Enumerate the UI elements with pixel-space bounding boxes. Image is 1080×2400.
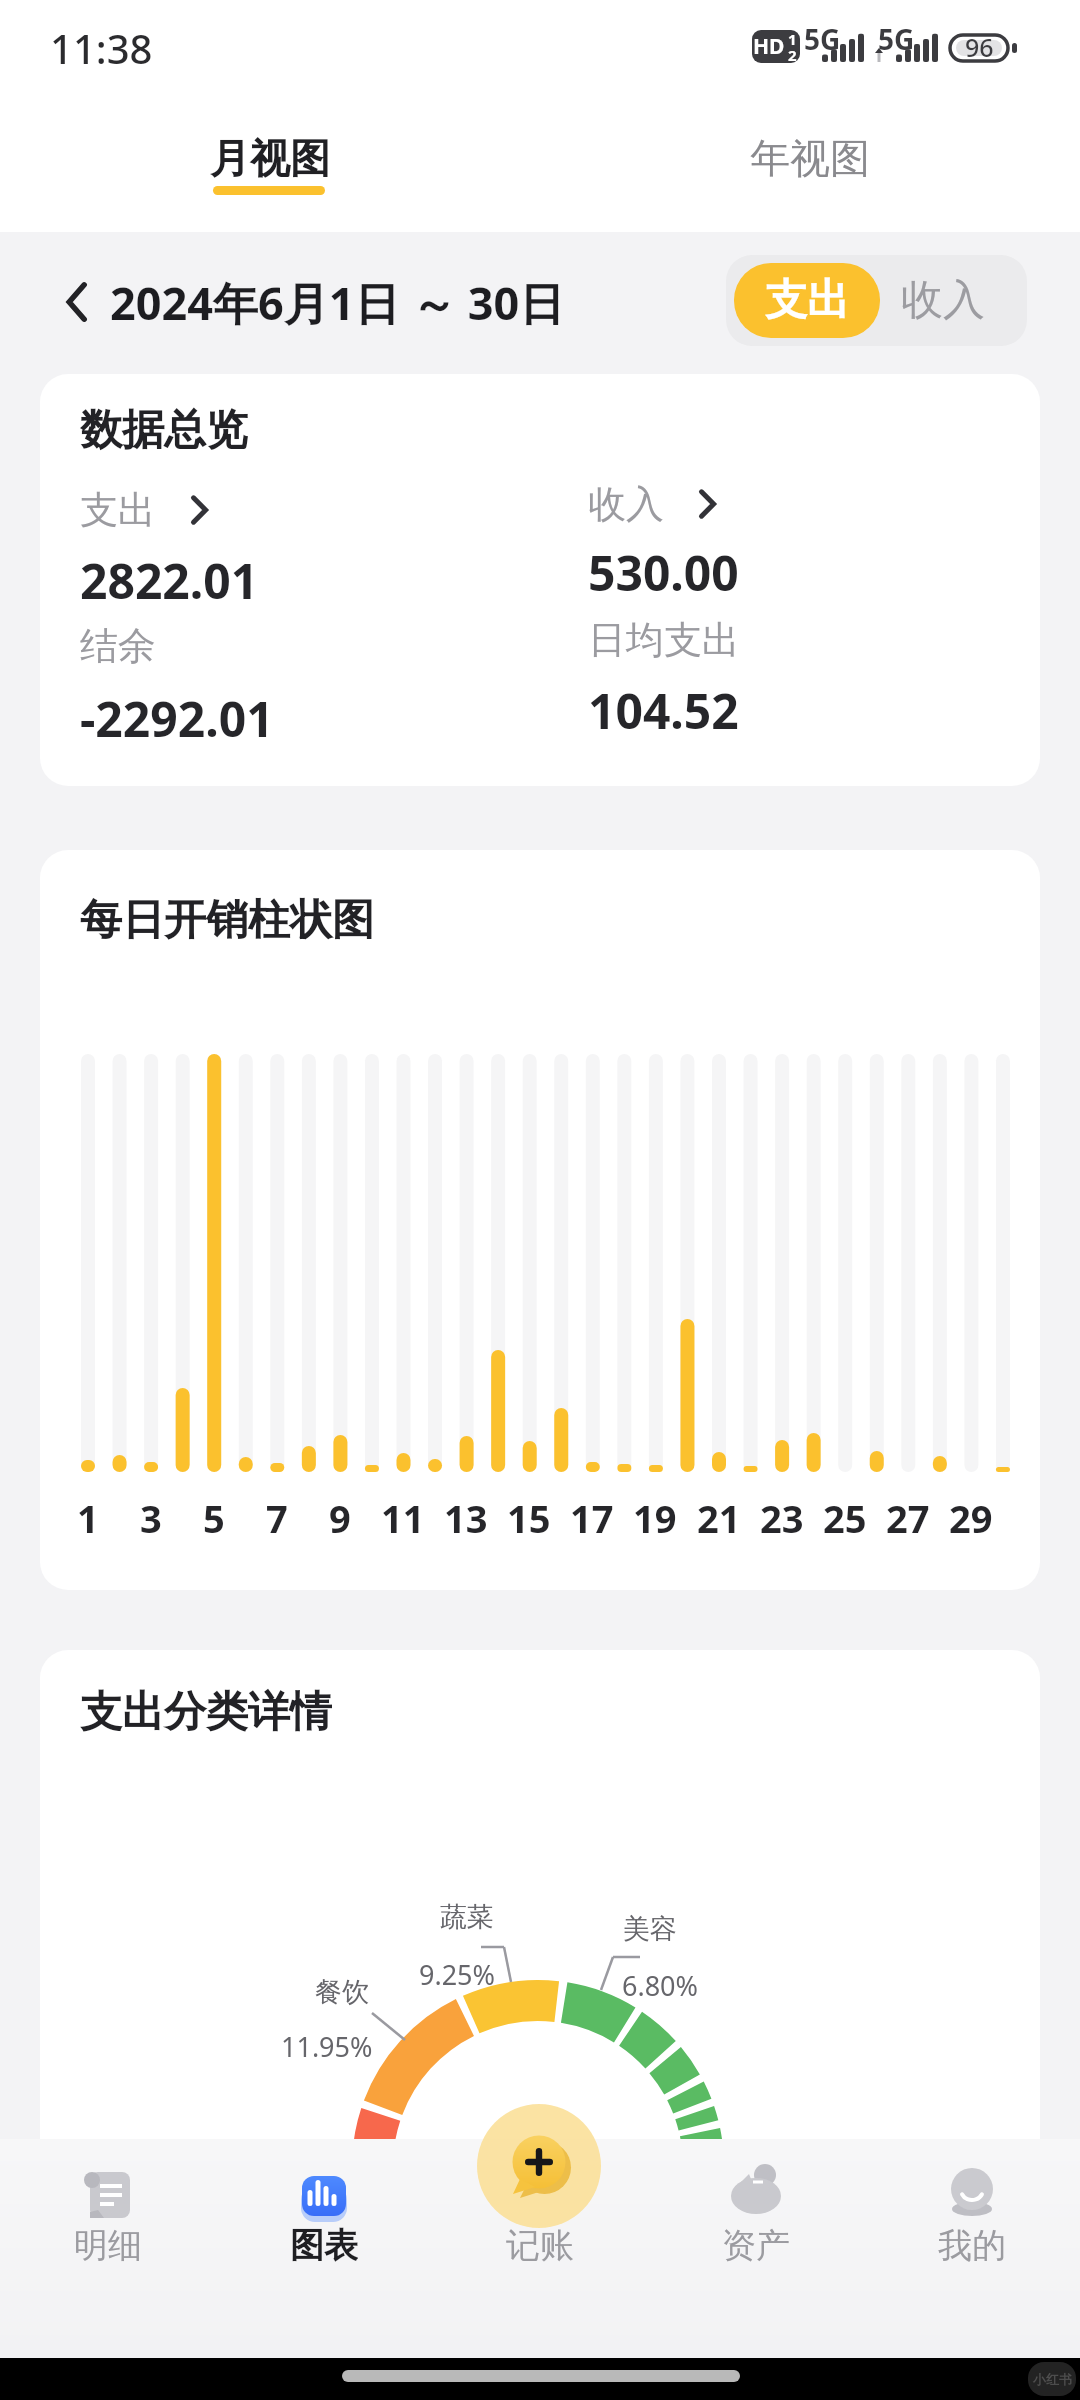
staticText: 104.52 [588, 678, 739, 732]
staticText: 餐饮 [315, 1975, 369, 2009]
button[interactable] [234, 2150, 414, 2280]
staticText: 9 [329, 1492, 351, 1538]
button[interactable] [882, 2150, 1062, 2280]
button[interactable] [477, 2104, 601, 2228]
staticText: 27 [886, 1492, 930, 1538]
staticText: 5G [878, 20, 915, 50]
staticText: 3 [140, 1492, 162, 1538]
staticText: 月视图 [210, 133, 330, 183]
staticText: 1 [77, 1492, 99, 1538]
staticText: 结余 [80, 622, 156, 668]
button[interactable] [40, 850, 1040, 1590]
staticText: 29 [949, 1492, 993, 1538]
staticText: 支出 [765, 274, 849, 327]
staticText: 11:38 [50, 21, 153, 75]
staticText: 收入 [901, 274, 985, 327]
staticText: 年视图 [750, 133, 870, 183]
staticText: 2822.01 [80, 548, 259, 602]
staticText: 25 [823, 1492, 867, 1538]
staticText: HD [753, 32, 785, 61]
staticText: 11.95% [281, 2028, 373, 2065]
staticText: 数据总览 [80, 404, 248, 456]
button[interactable]: 年视图 [730, 128, 890, 188]
staticText: 记账 [506, 2224, 574, 2266]
button[interactable] [40, 1650, 1040, 2340]
button[interactable] [40, 374, 1040, 786]
staticText: 21 [697, 1492, 741, 1538]
button[interactable]: 月视图 [190, 128, 350, 188]
staticText: 19 [633, 1492, 677, 1538]
staticText: 13 [444, 1492, 488, 1538]
staticText: 9.25% [419, 1956, 496, 1993]
staticText: 我的 [938, 2224, 1006, 2266]
staticText: 支出 [80, 486, 156, 532]
button[interactable]: 2024年6月1日 ～ 30日 [110, 272, 610, 332]
staticText: 美容 [623, 1912, 677, 1946]
button[interactable] [666, 2150, 846, 2280]
staticText: 小红书 [1033, 2371, 1072, 2387]
button[interactable]: 记账 [470, 2224, 610, 2266]
staticText: 1 [788, 29, 797, 46]
staticText: 资产 [722, 2224, 790, 2266]
staticText: 5 [203, 1492, 225, 1538]
staticText: 明细 [74, 2224, 142, 2266]
staticText: 支出分类详情 [80, 1686, 332, 1738]
staticText: 蔬菜 [440, 1900, 494, 1934]
staticText: 23 [760, 1492, 804, 1538]
staticText: 15 [507, 1492, 551, 1538]
staticText: 收入 [588, 480, 664, 526]
staticText: 11 [381, 1492, 425, 1538]
staticText: 530.00 [588, 540, 739, 594]
staticText: 图表 [290, 2224, 358, 2266]
button[interactable]: 支出 [734, 263, 880, 338]
staticText: 96 [965, 30, 994, 60]
staticText: 每日开销柱状图 [80, 894, 374, 946]
button[interactable]: 收入 [870, 263, 1016, 338]
staticText: 日均支出 [588, 616, 740, 662]
staticText: 7 [266, 1492, 288, 1538]
staticText: 6.80% [622, 1967, 699, 2004]
staticText: 5G [804, 20, 841, 50]
staticText: 2024年6月1日 ～ 30日 [110, 272, 565, 332]
staticText: -2292.01 [80, 686, 274, 740]
staticText: 17 [570, 1492, 614, 1538]
staticText: 2 [788, 45, 797, 62]
button[interactable] [18, 2150, 198, 2280]
